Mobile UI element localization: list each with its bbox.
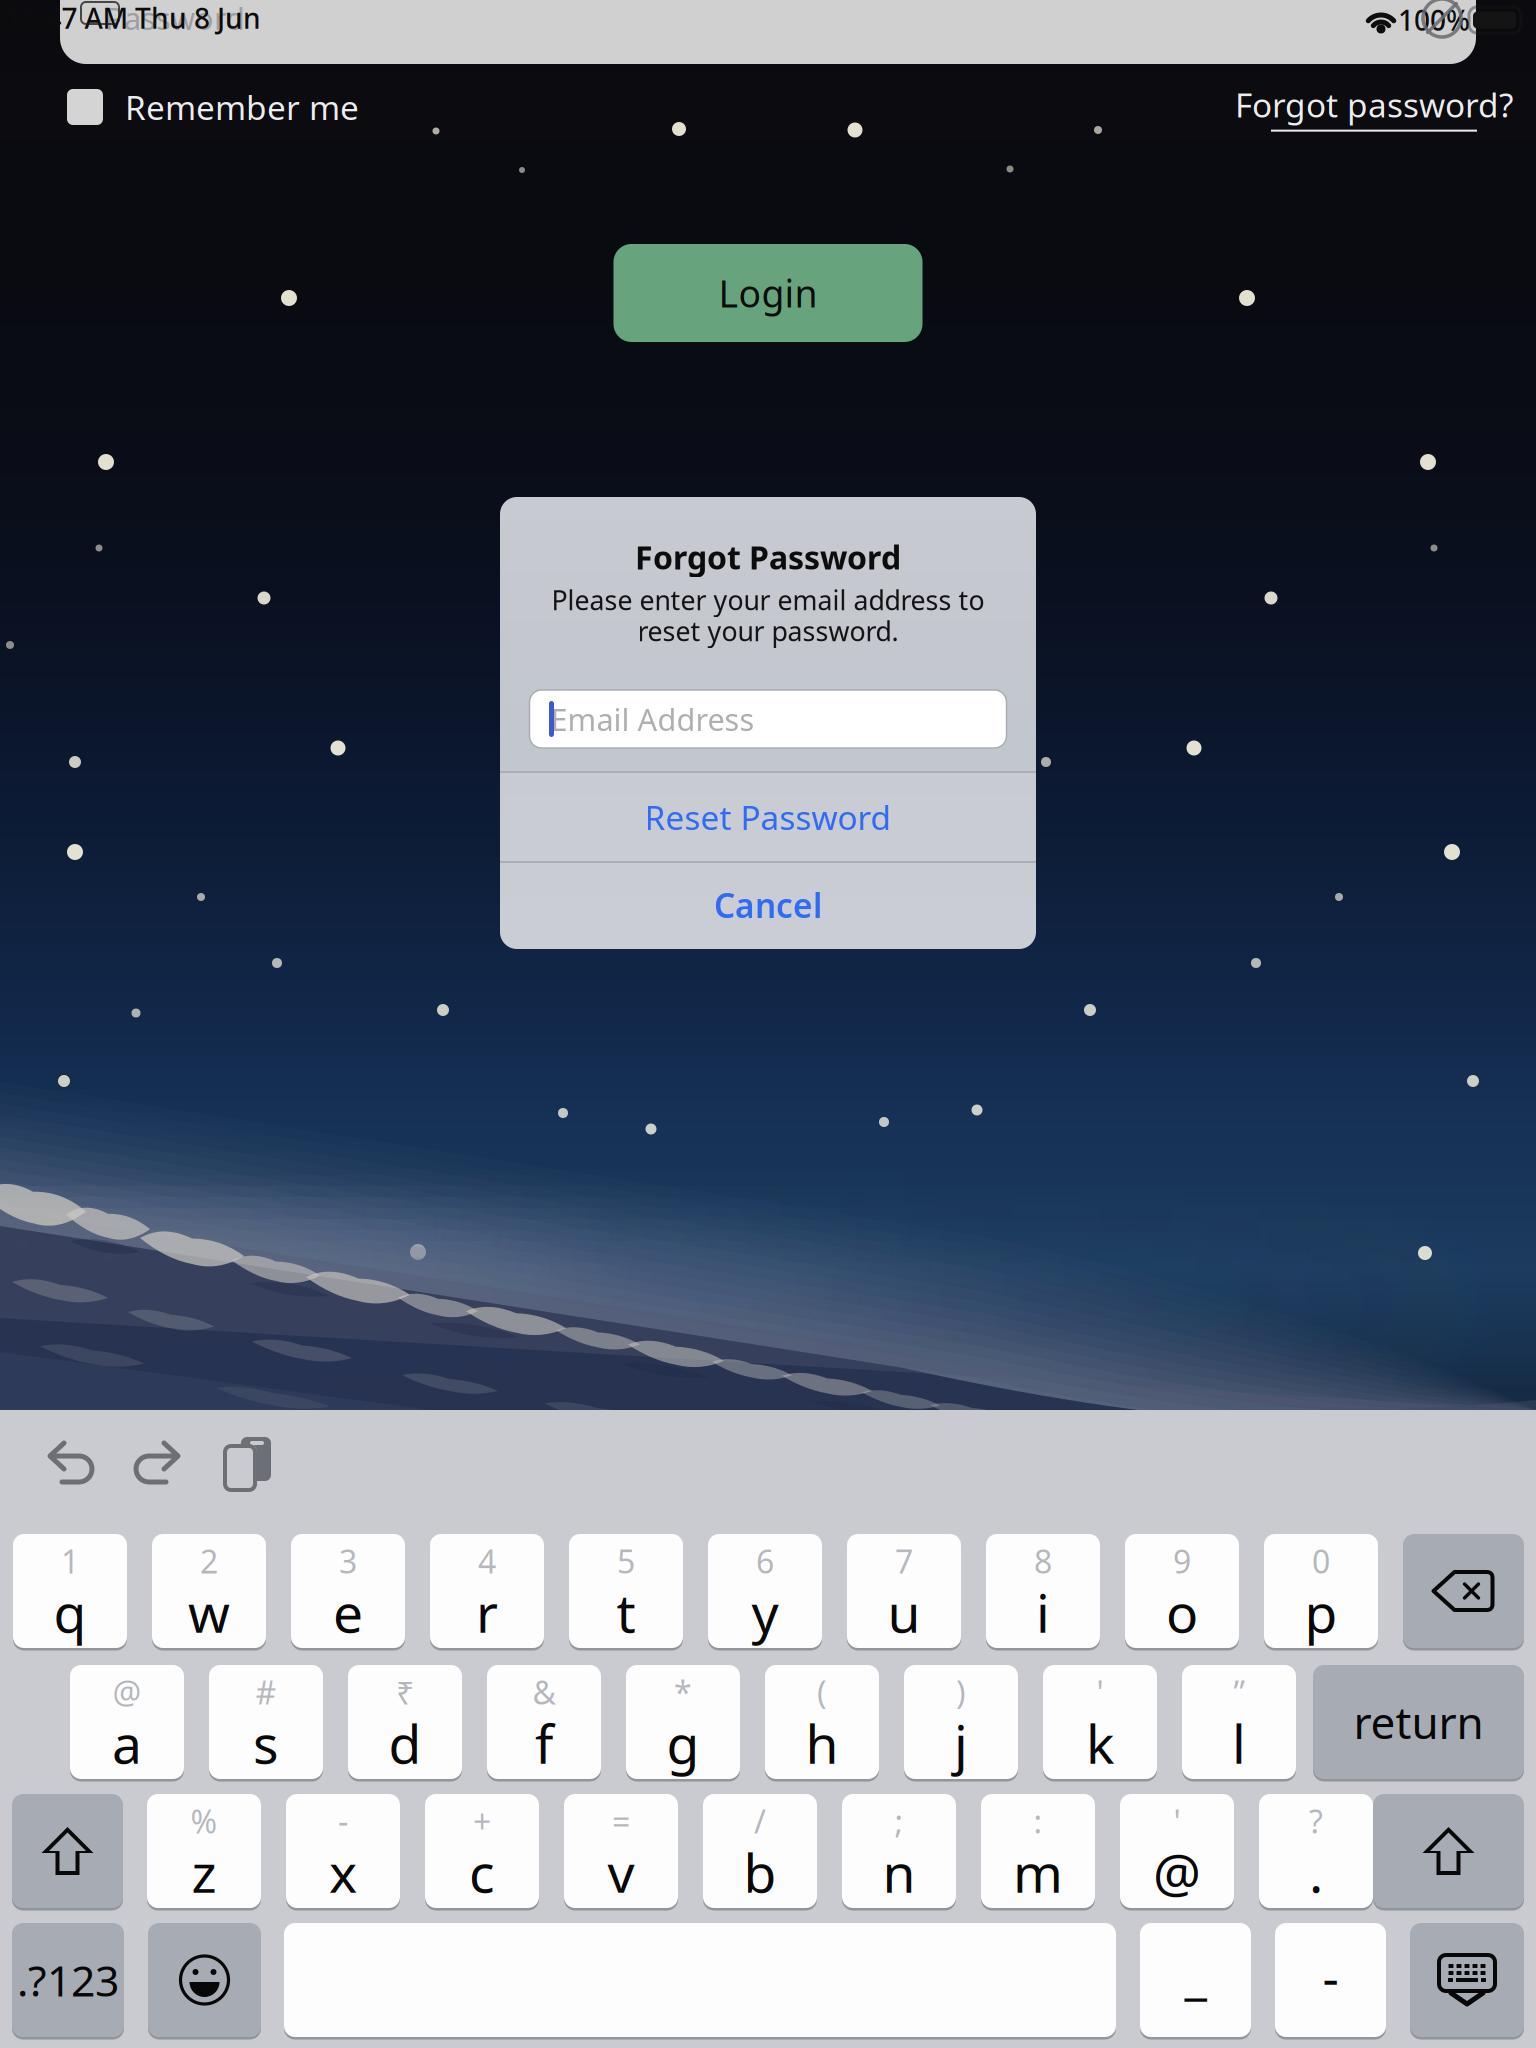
button[interactable]: 8 xyxy=(986,1534,1100,1652)
staticText: : xyxy=(1033,1800,1042,1842)
staticText: Email Address xyxy=(550,699,754,739)
staticText: q xyxy=(53,1577,86,1647)
staticText: ) xyxy=(956,1671,966,1713)
staticText: f xyxy=(535,1708,553,1778)
staticText: n xyxy=(882,1837,915,1907)
button[interactable]: ; xyxy=(842,1794,956,1912)
staticText: # xyxy=(255,1671,276,1713)
staticText: ' xyxy=(1173,1800,1180,1842)
button[interactable]: ? xyxy=(1259,1794,1373,1912)
staticText: k xyxy=(1086,1708,1114,1778)
staticText: + xyxy=(473,1800,491,1842)
button[interactable]: Reset Password xyxy=(500,772,1036,862)
button[interactable]: % xyxy=(147,1794,261,1912)
button[interactable]: Undo xyxy=(40,1434,98,1492)
button[interactable]: 6 xyxy=(708,1534,822,1652)
staticText: Forgot Password xyxy=(635,536,901,578)
staticText: d xyxy=(388,1708,421,1778)
button[interactable]: : xyxy=(981,1794,1095,1912)
staticText: - xyxy=(338,1800,348,1842)
button[interactable]: - xyxy=(286,1794,400,1912)
button[interactable]: Redo xyxy=(130,1434,188,1492)
button[interactable]: ₹ xyxy=(348,1665,462,1783)
staticText: ” xyxy=(1233,1671,1244,1713)
staticText: 9 xyxy=(1173,1540,1191,1582)
staticText: . xyxy=(1309,1837,1323,1907)
button[interactable] xyxy=(1403,1534,1524,1652)
button[interactable]: 0 xyxy=(1264,1534,1378,1652)
button[interactable]: Forgot password? xyxy=(1269,83,1479,131)
staticText: w xyxy=(188,1577,230,1647)
button[interactable]: * xyxy=(626,1665,740,1783)
staticText: t xyxy=(616,1577,635,1647)
button[interactable]: ( xyxy=(765,1665,879,1783)
button[interactable]: Login xyxy=(613,244,922,342)
staticText: .?123 xyxy=(17,1952,119,2008)
button[interactable]: Cancel xyxy=(500,861,1036,948)
button[interactable]: & xyxy=(487,1665,601,1783)
button[interactable]: 3 xyxy=(291,1534,405,1652)
staticText: _ xyxy=(1184,1940,1206,2008)
staticText: Password xyxy=(105,0,245,38)
button[interactable]: @ xyxy=(70,1665,184,1783)
staticText: Login xyxy=(718,268,817,318)
staticText: - xyxy=(1322,1943,1338,2011)
staticText: 10:47 AM xyxy=(5,0,128,37)
staticText: b xyxy=(743,1837,776,1907)
staticText: s xyxy=(253,1708,279,1778)
staticText: = xyxy=(612,1800,630,1842)
button[interactable] xyxy=(12,1794,123,1912)
staticText: 2 xyxy=(200,1540,218,1582)
button[interactable] xyxy=(1373,1794,1524,1912)
staticText: l xyxy=(1232,1708,1246,1778)
button[interactable]: - xyxy=(1275,1923,1386,2041)
staticText: return xyxy=(1353,1693,1483,1751)
button[interactable]: / xyxy=(703,1794,817,1912)
staticText: ₹ xyxy=(396,1671,414,1713)
button[interactable]: return xyxy=(1313,1665,1524,1783)
staticText: Forgot password? xyxy=(1235,82,1513,127)
staticText: a xyxy=(112,1708,142,1778)
button[interactable]: .?123 xyxy=(12,1923,124,2041)
button[interactable]: Remember me xyxy=(67,83,303,131)
staticText: u xyxy=(887,1577,920,1647)
button[interactable] xyxy=(1410,1923,1524,2041)
staticText: 5 xyxy=(617,1540,635,1582)
button[interactable] xyxy=(148,1923,261,2041)
staticText: Reset Password xyxy=(644,795,891,839)
staticText: Thu 8 Jun xyxy=(135,0,261,37)
button[interactable]: 2 xyxy=(152,1534,266,1652)
button[interactable]: # xyxy=(209,1665,323,1783)
button[interactable]: = xyxy=(564,1794,678,1912)
button[interactable]: + xyxy=(425,1794,539,1912)
button[interactable]: 9 xyxy=(1125,1534,1239,1652)
button[interactable]: ' xyxy=(1120,1794,1234,1912)
staticText: Remember me xyxy=(125,85,359,129)
button[interactable]: ” xyxy=(1182,1665,1296,1783)
button[interactable]: 1 xyxy=(13,1534,127,1652)
button[interactable]: 7 xyxy=(847,1534,961,1652)
staticText: 8 xyxy=(1034,1540,1052,1582)
staticText: 0 xyxy=(1312,1540,1330,1582)
staticText: m xyxy=(1013,1837,1063,1907)
staticText: * xyxy=(674,1671,692,1713)
button[interactable]: ' xyxy=(1043,1665,1157,1783)
button[interactable]: 4 xyxy=(430,1534,544,1652)
staticText: x xyxy=(329,1837,357,1907)
staticText: g xyxy=(666,1708,699,1778)
button[interactable]: Paste xyxy=(219,1434,277,1492)
staticText: 3 xyxy=(339,1540,357,1582)
button[interactable]: ) xyxy=(904,1665,1018,1783)
staticText: 4 xyxy=(478,1540,496,1582)
staticText: i xyxy=(1036,1577,1050,1647)
staticText: ; xyxy=(894,1800,903,1842)
staticText: c xyxy=(469,1837,495,1907)
staticText: ' xyxy=(1096,1671,1103,1713)
staticText: 1 xyxy=(61,1540,79,1582)
staticText: % xyxy=(190,1800,217,1842)
button[interactable]: 5 xyxy=(569,1534,683,1652)
staticText: h xyxy=(805,1708,838,1778)
button[interactable] xyxy=(284,1923,1116,2041)
button[interactable]: _ xyxy=(1140,1923,1251,2041)
staticText: j xyxy=(954,1708,968,1778)
